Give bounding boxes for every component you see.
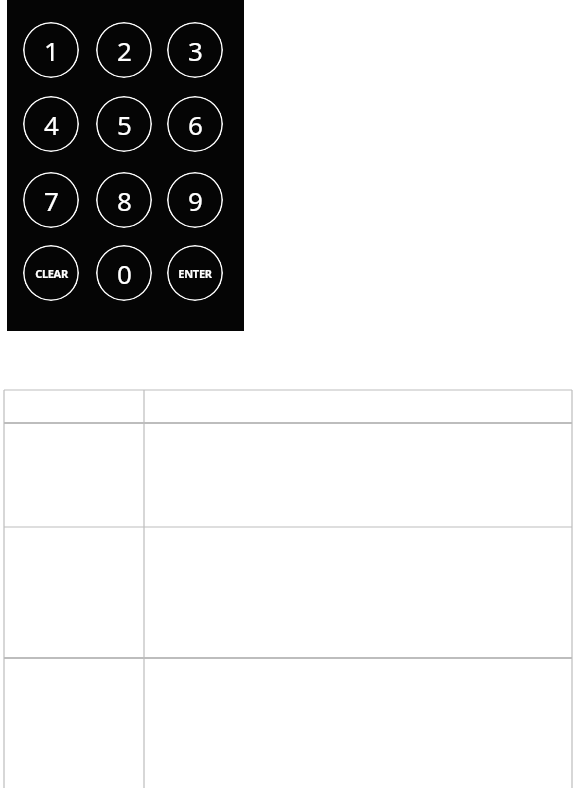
staticText: 0 (117, 256, 132, 291)
button[interactable]: ENTER (167, 245, 223, 301)
staticText: 2 (117, 33, 132, 68)
staticText: 9 (188, 183, 203, 218)
button[interactable]: 4 (23, 96, 79, 152)
button[interactable]: 7 (23, 172, 79, 228)
staticText: 1 (44, 33, 59, 68)
staticText: 5 (117, 107, 132, 142)
staticText: 8 (117, 183, 132, 218)
button[interactable]: 9 (167, 172, 223, 228)
staticText: 4 (44, 107, 59, 142)
button[interactable]: CLEAR (23, 245, 79, 301)
staticText: 6 (188, 107, 203, 142)
button[interactable]: 6 (167, 96, 223, 152)
staticText: 7 (44, 183, 59, 218)
button[interactable]: 3 (167, 22, 223, 78)
staticText: ENTER (178, 266, 212, 281)
staticText: 3 (188, 33, 203, 68)
button[interactable]: 2 (96, 22, 152, 78)
staticText: CLEAR (35, 266, 68, 281)
button[interactable]: 1 (23, 22, 79, 78)
button[interactable]: 5 (96, 96, 152, 152)
button[interactable]: 8 (96, 172, 152, 228)
button[interactable]: 0 (96, 245, 152, 301)
